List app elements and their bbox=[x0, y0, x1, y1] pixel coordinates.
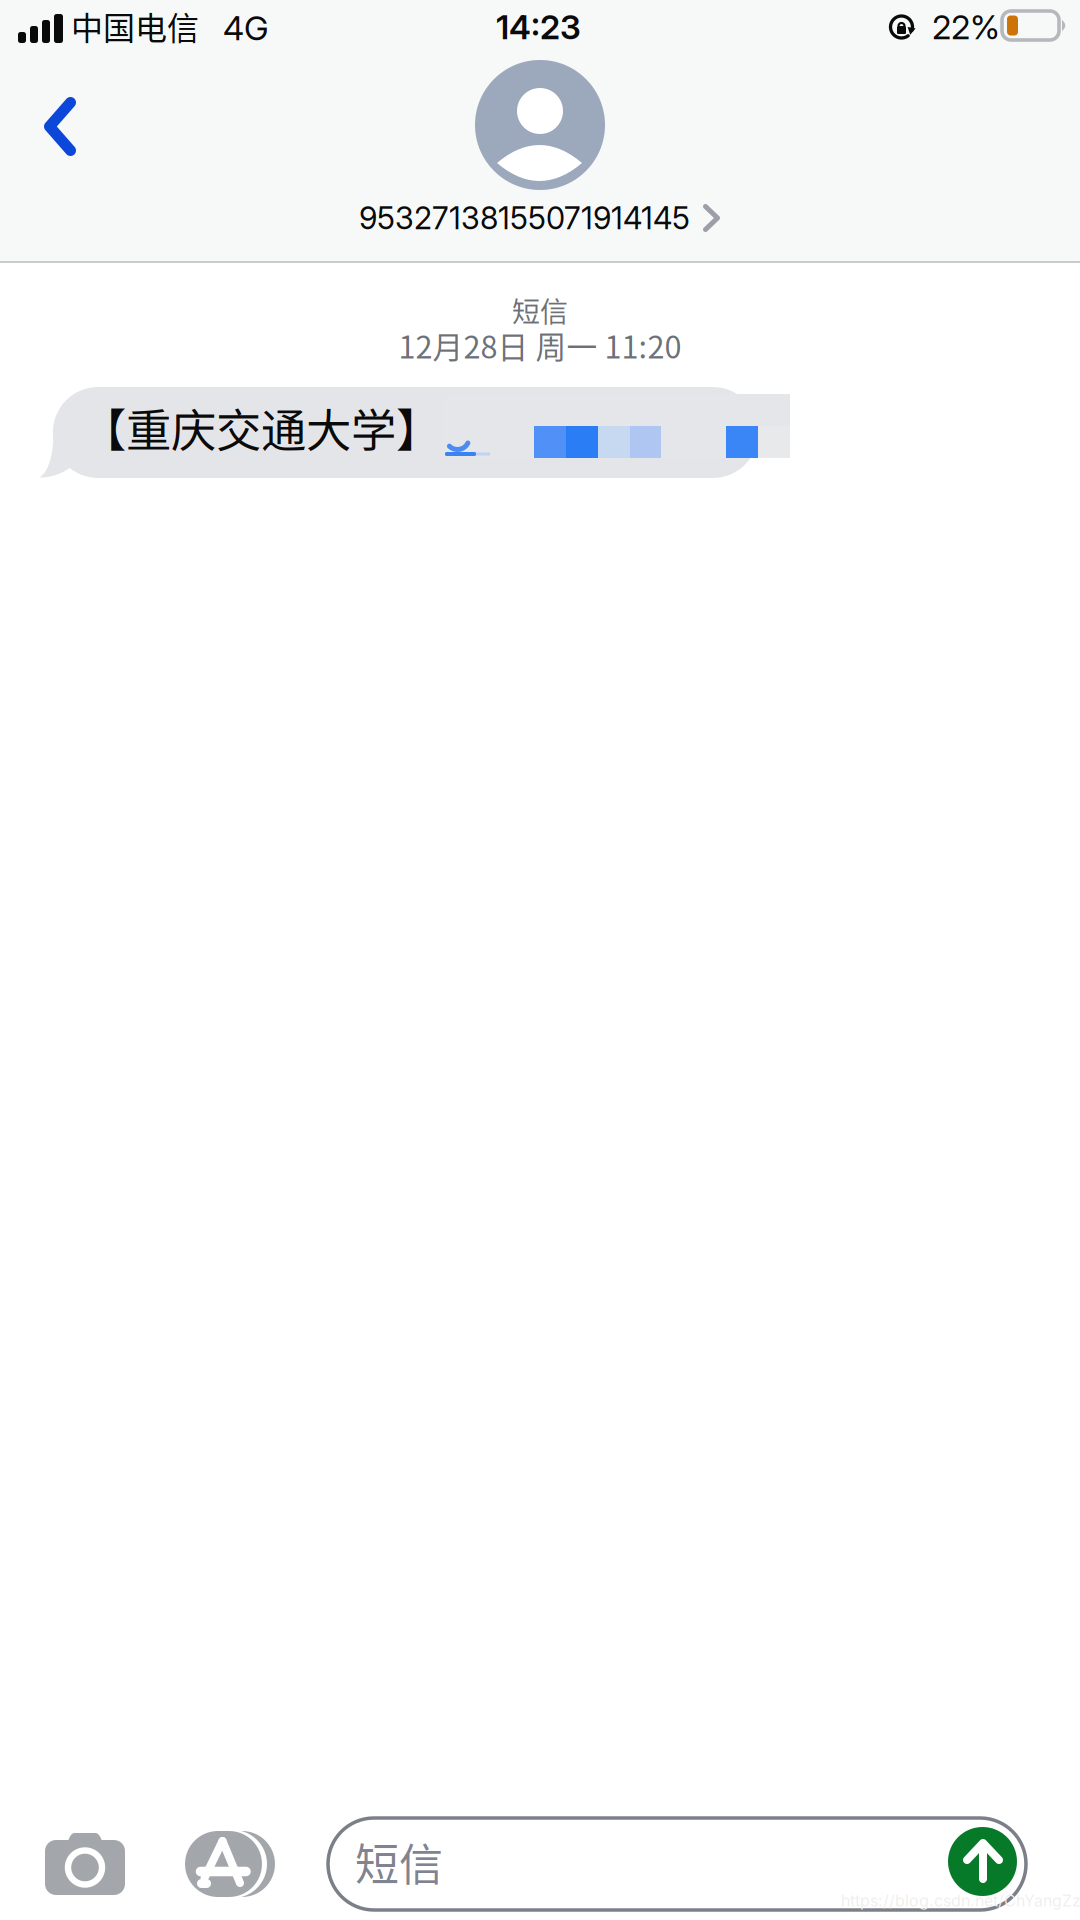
staticText: 22% bbox=[932, 7, 1000, 47]
button[interactable]: App Store bbox=[169, 1815, 292, 1913]
staticText: 短信 bbox=[512, 290, 568, 330]
button[interactable]: 95327138155071914145 bbox=[359, 58, 721, 240]
button[interactable]: Send bbox=[948, 1827, 1017, 1896]
button[interactable]: Camera bbox=[29, 1817, 141, 1911]
staticText: https://blog.csdn.net/ChYangZzz bbox=[841, 1891, 1080, 1910]
staticText: 中国电信 bbox=[71, 3, 199, 49]
staticText: 4G bbox=[223, 8, 269, 48]
button[interactable]: Back bbox=[32, 85, 88, 168]
staticText: 【重庆交通大学】 bbox=[81, 395, 441, 461]
staticText: 短信 bbox=[355, 1830, 443, 1894]
staticText: 12月28日 周一 11:20 bbox=[398, 323, 681, 367]
staticText: 14:23 bbox=[496, 7, 581, 47]
staticText: 95327138155071914145 bbox=[359, 199, 690, 236]
button[interactable]: 短信 bbox=[328, 1818, 1026, 1910]
